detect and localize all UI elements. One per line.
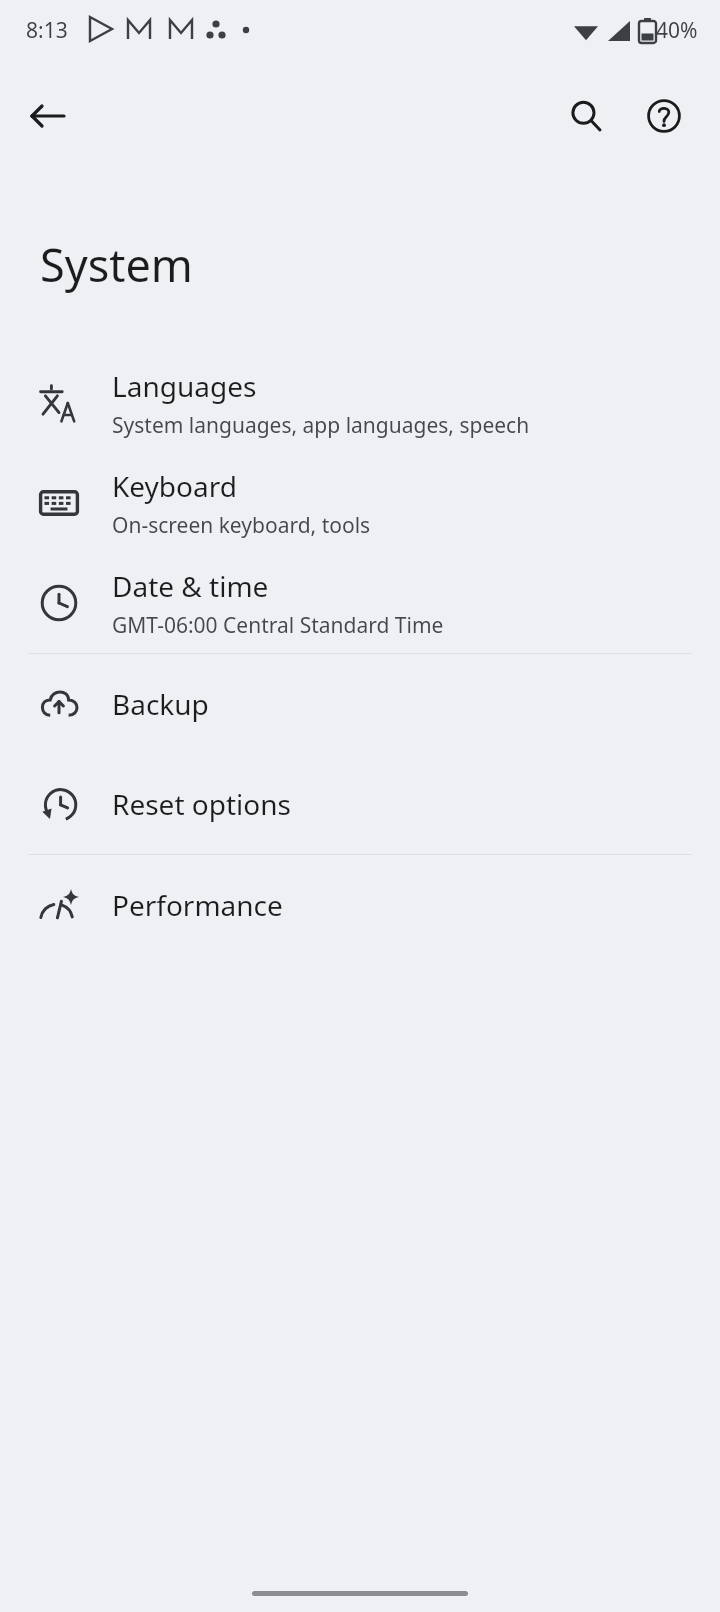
staticText: System <box>40 234 193 295</box>
staticText: 8:13 <box>26 16 68 45</box>
staticText: Reset options <box>112 785 291 823</box>
staticText: On-screen keyboard, tools <box>112 511 371 540</box>
button[interactable]: Date & time <box>0 553 720 653</box>
staticText: Backup <box>112 685 209 723</box>
staticText: 40% <box>656 16 698 45</box>
button[interactable]: Keyboard <box>0 453 720 553</box>
button[interactable]: Performance <box>0 855 720 955</box>
button[interactable]: Back <box>14 82 82 150</box>
button[interactable]: Help <box>630 82 698 150</box>
staticText: Languages <box>112 367 257 405</box>
button[interactable]: Languages <box>0 353 720 453</box>
staticText: Date & time <box>112 567 269 605</box>
button[interactable]: Search <box>552 82 620 150</box>
staticText: Keyboard <box>112 467 237 505</box>
staticText: System languages, app languages, speech <box>112 411 530 440</box>
button[interactable]: Backup <box>0 654 720 754</box>
button[interactable]: Reset options <box>0 754 720 854</box>
staticText: Performance <box>112 886 283 924</box>
staticText: GMT-06:00 Central Standard Time <box>112 611 444 640</box>
